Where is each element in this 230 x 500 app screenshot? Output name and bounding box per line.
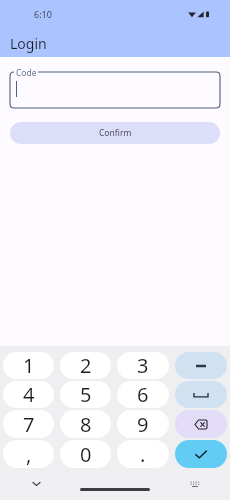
staticText: 4 — [23, 381, 35, 408]
staticText: . — [140, 441, 146, 468]
button[interactable]: space — [175, 381, 227, 408]
button[interactable]: 0 — [60, 440, 111, 468]
button[interactable]: . — [117, 440, 169, 468]
button[interactable]: 9 — [117, 410, 169, 438]
button[interactable]: 2 — [60, 352, 111, 379]
staticText: Code — [16, 67, 37, 79]
staticText: , — [26, 441, 32, 468]
button[interactable]: 8 — [60, 410, 111, 438]
button[interactable]: Hide keyboard — [26, 474, 46, 494]
button[interactable]: enter — [175, 440, 227, 468]
button[interactable]: minus — [175, 352, 227, 379]
staticText: 9 — [137, 411, 149, 438]
button[interactable]: 1 — [3, 352, 54, 379]
staticText: 3 — [137, 352, 149, 379]
staticText: 1 — [23, 352, 35, 379]
button[interactable]: 6 — [117, 381, 169, 408]
staticText: Login — [10, 34, 47, 53]
staticText: 7 — [23, 411, 35, 438]
button[interactable]: Switch keyboard — [185, 474, 205, 494]
staticText: 5 — [80, 381, 92, 408]
staticText: 2 — [80, 352, 92, 379]
staticText: 6:10 — [34, 8, 52, 20]
button[interactable]: 3 — [117, 352, 169, 379]
button[interactable]: Confirm — [10, 122, 220, 144]
staticText: Confirm — [99, 127, 132, 139]
button[interactable]: Code text field — [0, 66, 230, 121]
staticText: 8 — [80, 411, 92, 438]
button[interactable]: 7 — [3, 410, 54, 438]
button[interactable]: 4 — [3, 381, 54, 408]
button[interactable]: , — [3, 440, 54, 468]
button[interactable]: back — [175, 410, 227, 438]
staticText: 0 — [80, 441, 92, 468]
button[interactable]: 5 — [60, 381, 111, 408]
staticText: 6 — [137, 381, 149, 408]
